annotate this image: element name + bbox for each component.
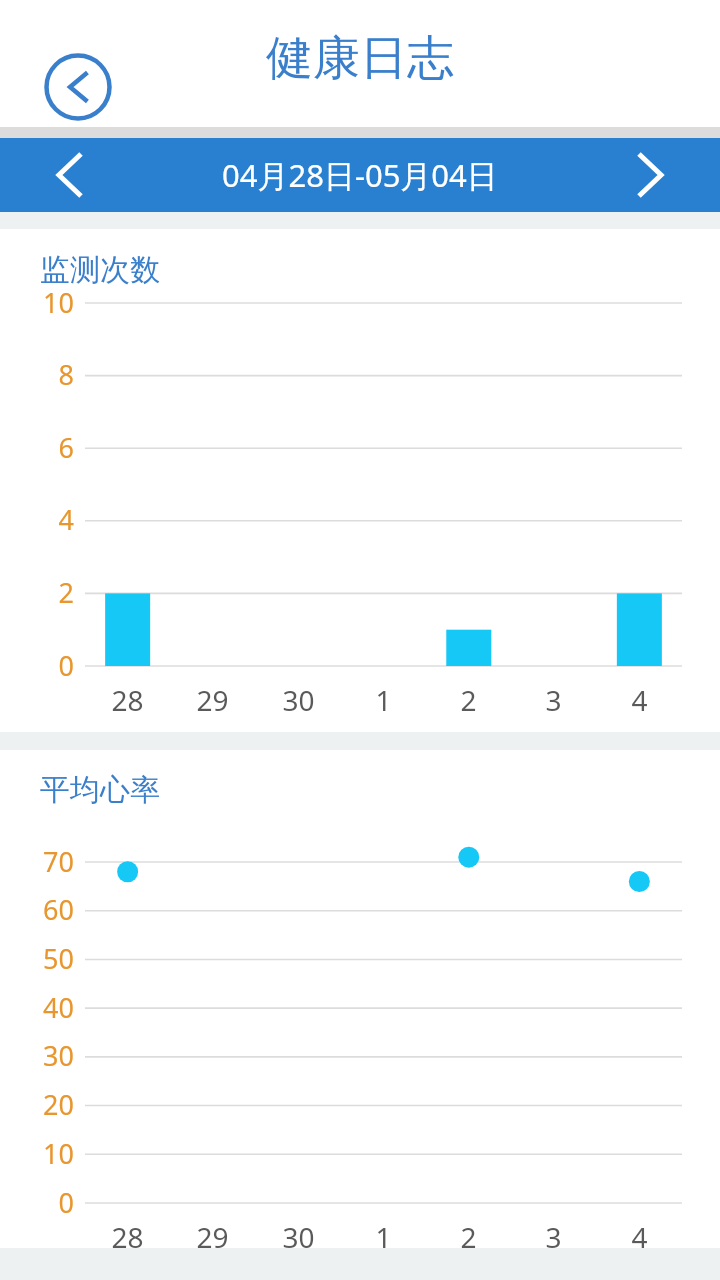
button[interactable]: Back: [44, 53, 112, 121]
staticText: 0: [10, 647, 74, 684]
staticText: 监测次数: [40, 251, 160, 289]
button[interactable]: Next week: [618, 141, 686, 209]
button[interactable]: Previous week: [34, 141, 102, 209]
staticText: 4: [597, 1218, 682, 1256]
staticText: 4: [597, 681, 682, 719]
staticText: 4: [10, 501, 74, 538]
staticText: 60: [10, 891, 74, 928]
staticText: 2: [426, 1218, 511, 1256]
staticText: 20: [10, 1086, 74, 1123]
staticText: 6: [10, 429, 74, 466]
staticText: 10: [10, 1135, 74, 1172]
staticText: 70: [10, 843, 74, 880]
staticText: 3: [511, 1218, 596, 1256]
staticText: 40: [10, 989, 74, 1026]
staticText: 0: [10, 1184, 74, 1221]
staticText: 04月28日-05月04日: [222, 154, 498, 196]
button[interactable]: 监测次数: [0, 229, 720, 732]
staticText: 平均心率: [40, 771, 160, 809]
button[interactable]: 平均心率: [0, 750, 720, 1248]
staticText: 2: [426, 681, 511, 719]
staticText: 30: [10, 1037, 74, 1074]
staticText: 28: [85, 681, 170, 719]
staticText: 28: [85, 1218, 170, 1256]
staticText: 3: [511, 681, 596, 719]
staticText: 2: [10, 574, 74, 611]
staticText: 1: [341, 1218, 426, 1256]
staticText: 1: [341, 681, 426, 719]
staticText: 健康日志: [266, 29, 454, 88]
staticText: 30: [256, 681, 341, 719]
staticText: 29: [170, 1218, 255, 1256]
staticText: 8: [10, 356, 74, 393]
staticText: 29: [170, 681, 255, 719]
staticText: 10: [10, 284, 74, 321]
staticText: 30: [256, 1218, 341, 1256]
staticText: 50: [10, 940, 74, 977]
